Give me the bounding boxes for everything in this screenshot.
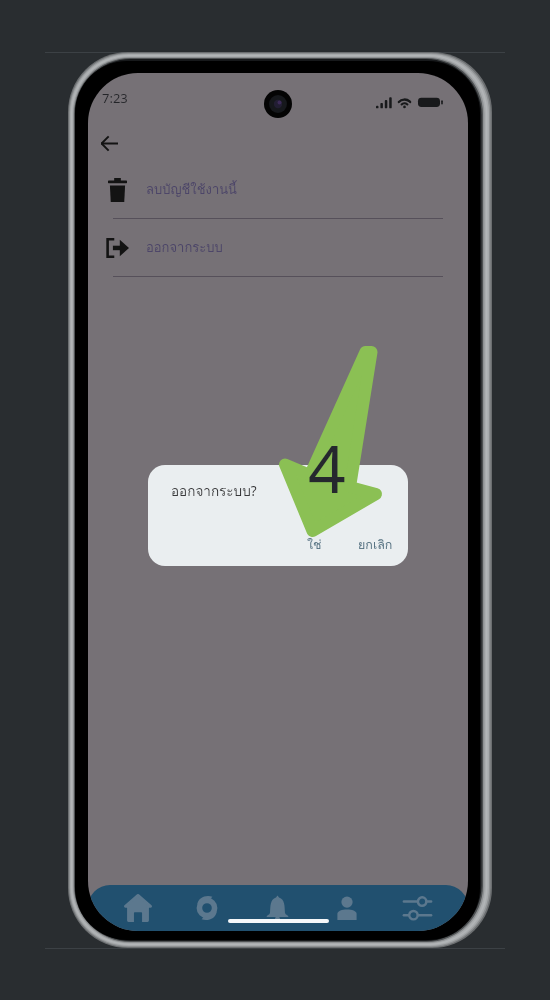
button[interactable]: Back (93, 127, 125, 159)
button[interactable]: Profile (312, 885, 382, 931)
staticText: ใช่ (307, 535, 322, 555)
button[interactable]: Storm (172, 885, 242, 931)
button[interactable]: Settings (382, 885, 452, 931)
staticText: ออกจากระบบ? (171, 480, 257, 501)
staticText: ออกจากระบบ (146, 237, 223, 258)
staticText: ยกเลิก (358, 535, 393, 555)
staticText: 7:23 (102, 89, 128, 107)
button[interactable]: Notifications (242, 885, 312, 931)
staticText: 4 (308, 422, 346, 512)
button[interactable]: ออกจากระบบ (88, 219, 468, 276)
button[interactable]: ใช่ (296, 533, 332, 557)
button[interactable]: ลบบัญชีใช้งานนี้ (88, 161, 468, 218)
button[interactable]: Home (103, 885, 172, 931)
staticText: ลบบัญชีใช้งานนี้ (146, 179, 237, 200)
button[interactable]: ยกเลิก (352, 533, 398, 557)
